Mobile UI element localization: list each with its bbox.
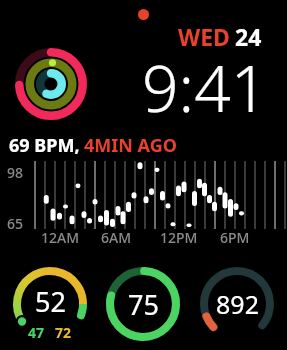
staticText: 65 bbox=[7, 214, 24, 233]
staticText: 72 bbox=[55, 323, 72, 342]
staticText: 892 bbox=[216, 287, 259, 321]
staticText: 47 bbox=[28, 323, 45, 342]
staticText: 98 bbox=[7, 163, 24, 182]
staticText: 6PM bbox=[220, 228, 250, 247]
staticText: 24 bbox=[235, 21, 262, 52]
staticText: 52 bbox=[35, 283, 66, 320]
button[interactable]: Steps 892 bbox=[199, 266, 275, 342]
staticText: 12PM bbox=[160, 228, 198, 247]
staticText: 6AM bbox=[101, 228, 132, 247]
staticText: 9:41 bbox=[142, 44, 268, 131]
staticText: 75 bbox=[128, 286, 159, 323]
staticText: 12AM bbox=[41, 228, 80, 247]
button[interactable]: 69 BPM, bbox=[9, 133, 177, 158]
button[interactable]: Noise 75 bbox=[105, 266, 181, 342]
button[interactable]: Activity rings bbox=[14, 47, 88, 121]
button[interactable]: Notification bbox=[138, 9, 149, 20]
staticText: WED bbox=[178, 21, 230, 52]
button[interactable]: Blood oxygen 52 bbox=[12, 266, 88, 342]
staticText: 4MIN AGO bbox=[84, 133, 177, 158]
button[interactable]: WED bbox=[178, 21, 262, 52]
staticText: 69 BPM, bbox=[9, 133, 80, 158]
button[interactable]: Heart rate chart bbox=[35, 161, 285, 229]
